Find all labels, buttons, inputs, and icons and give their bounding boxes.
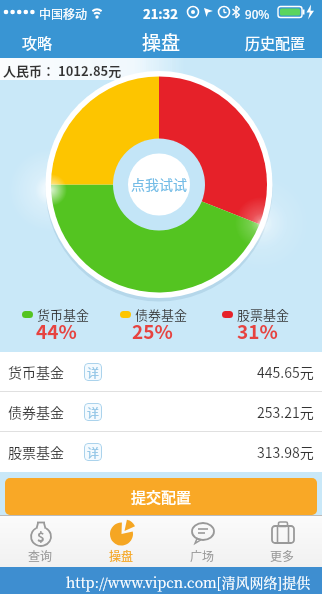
staticText: 445.65元 bbox=[257, 362, 314, 382]
staticText: 21:32 bbox=[143, 4, 178, 23]
staticText: 25% bbox=[132, 317, 173, 345]
staticText: 广场 bbox=[190, 547, 215, 564]
staticText: 债券基金 bbox=[8, 402, 64, 422]
staticText: http://www.vipcn.com[清风网络]提供 bbox=[66, 572, 311, 592]
staticText: 操盘 bbox=[142, 28, 181, 56]
staticText: 253.21元 bbox=[257, 402, 314, 422]
staticText: 历史配置 bbox=[245, 32, 306, 54]
staticText: 中国移动 bbox=[39, 5, 88, 22]
staticText: 攻略 bbox=[22, 32, 53, 54]
staticText: 货币基金 bbox=[8, 362, 64, 382]
staticText: 查询 bbox=[28, 547, 53, 564]
staticText: 44% bbox=[36, 317, 77, 345]
staticText: 股票基金 bbox=[8, 442, 64, 462]
staticText: 详 bbox=[87, 364, 100, 381]
staticText: 货币基金 bbox=[37, 305, 90, 324]
staticText: 点我试试 bbox=[131, 174, 187, 194]
staticText: 90% bbox=[245, 5, 270, 22]
staticText: 操盘 bbox=[109, 547, 134, 564]
staticText: $ bbox=[37, 527, 45, 546]
staticText: 31% bbox=[237, 317, 278, 345]
staticText: 债券基金 bbox=[135, 305, 188, 324]
staticText: 1012.85元 bbox=[58, 61, 122, 80]
staticText: 313.98元 bbox=[257, 442, 314, 462]
staticText: 提交配置 bbox=[131, 486, 192, 508]
staticText: 人民币： bbox=[3, 61, 56, 80]
staticText: 详 bbox=[87, 404, 100, 421]
staticText: 详 bbox=[87, 444, 100, 461]
staticText: 更多 bbox=[270, 547, 295, 564]
staticText: 股票基金 bbox=[237, 305, 290, 324]
